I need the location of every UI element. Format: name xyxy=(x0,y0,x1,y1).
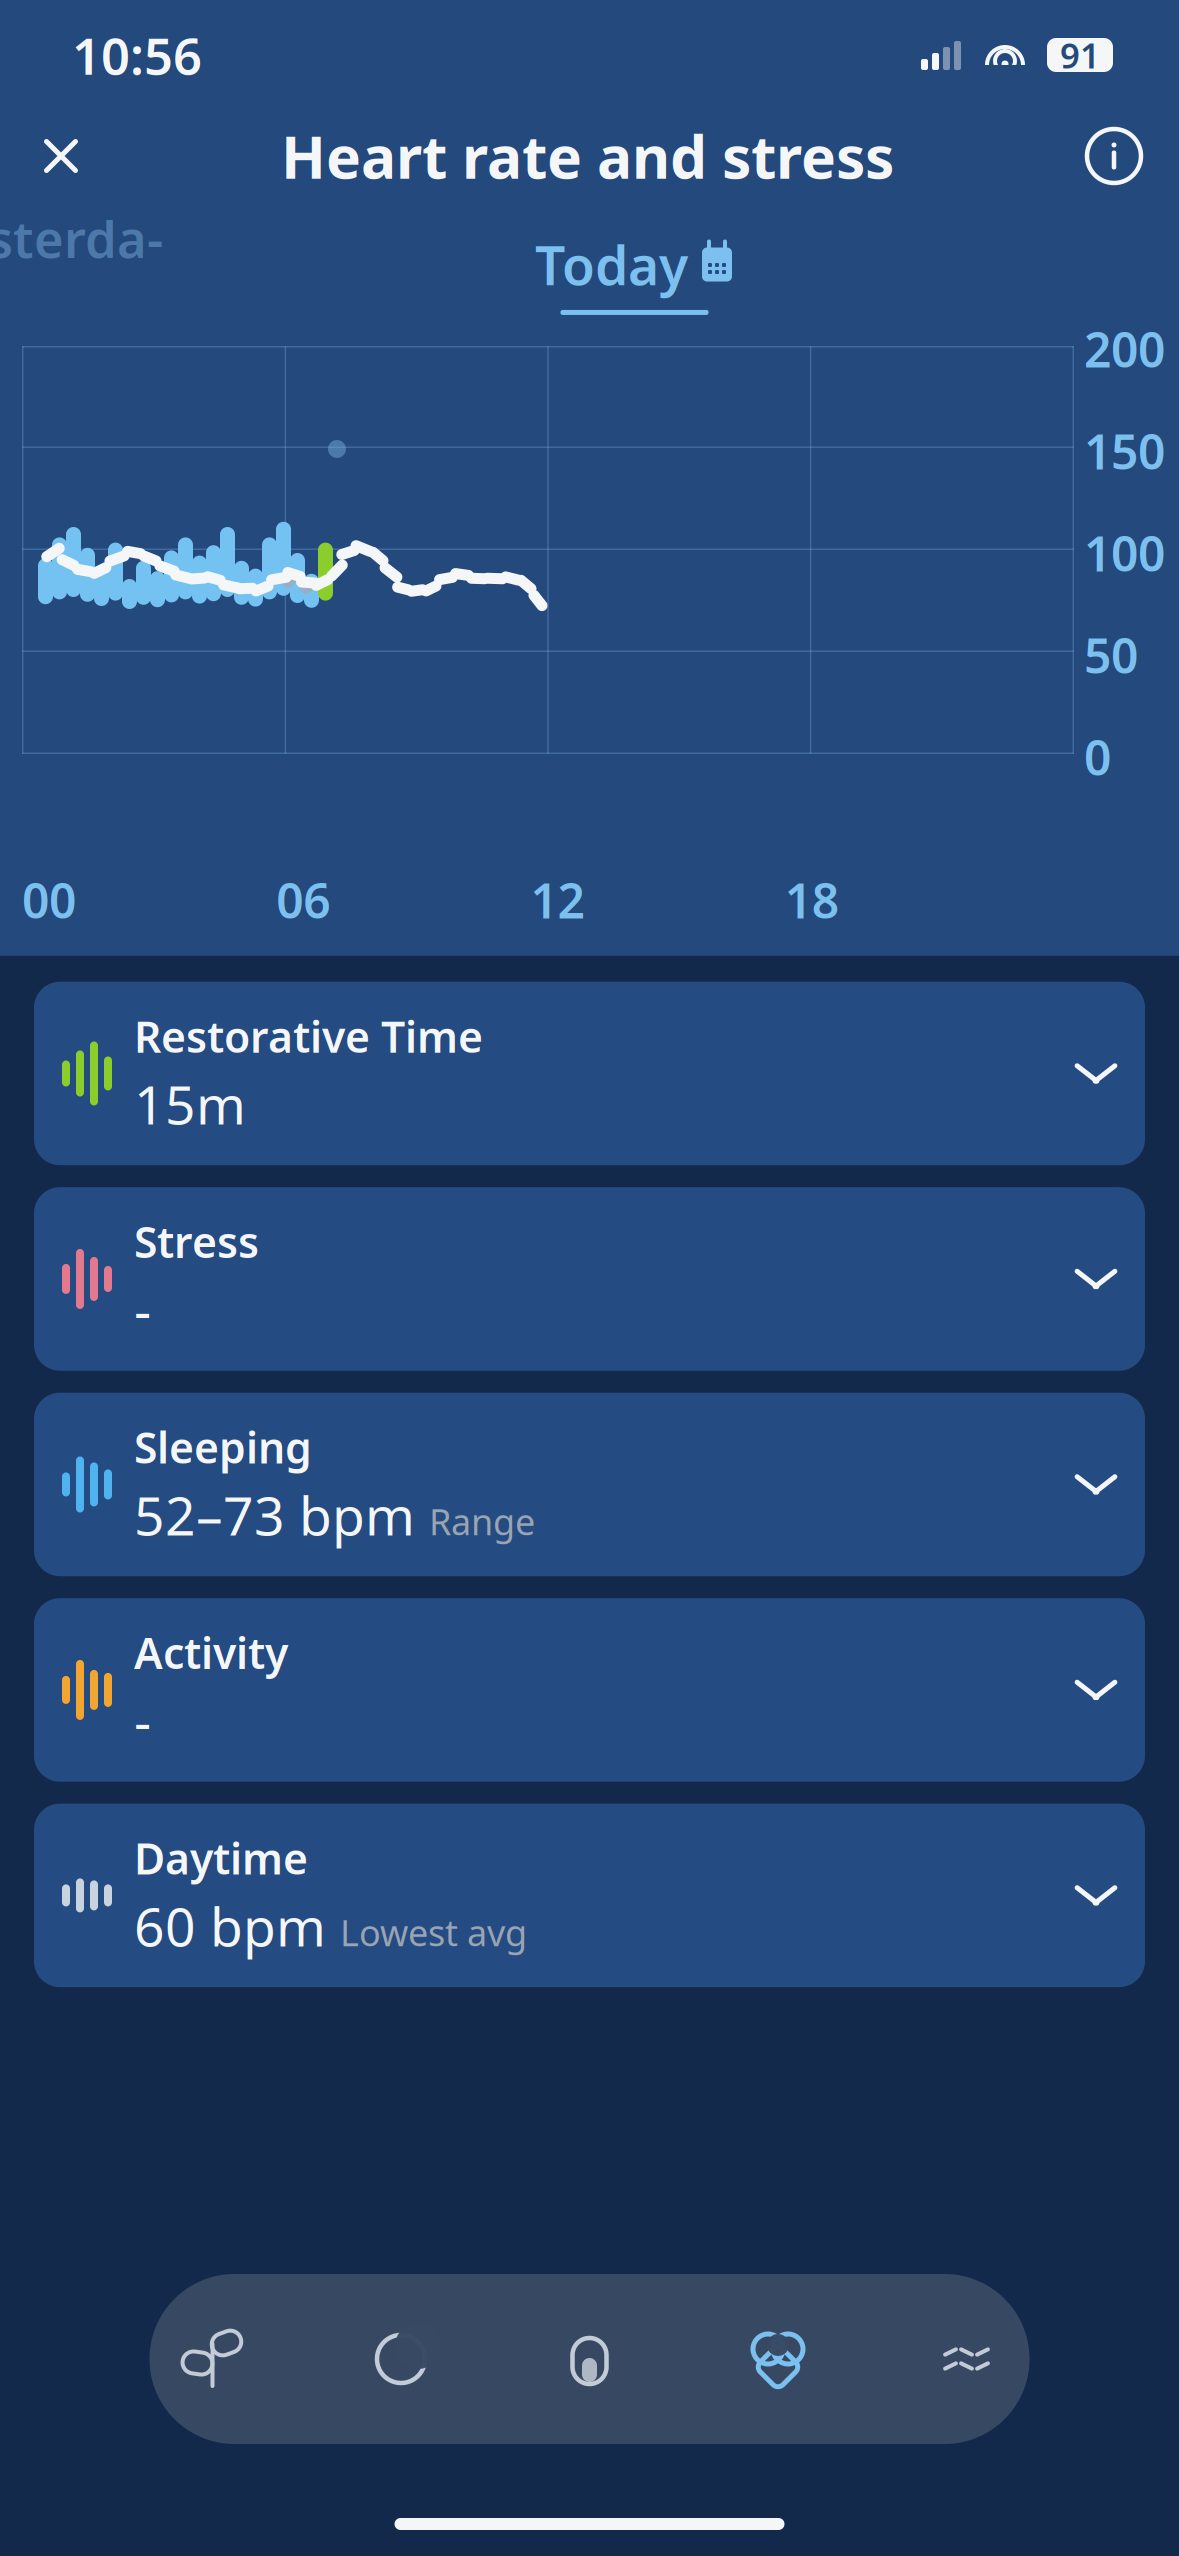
staticText: 00 xyxy=(22,868,76,932)
button[interactable]: Activity xyxy=(560,2330,618,2388)
button[interactable]: Daytime xyxy=(34,1804,1145,1987)
button[interactable]: Sleeping xyxy=(34,1393,1145,1576)
button[interactable]: Activity xyxy=(34,1598,1145,1782)
staticText: 52–73 bpm xyxy=(134,1479,415,1550)
staticText: 200 xyxy=(1084,317,1165,381)
button[interactable]: Information xyxy=(1079,121,1149,191)
button[interactable]: Sleep xyxy=(372,2330,430,2388)
button[interactable]: Yesterday xyxy=(0,191,170,353)
staticText: 91 xyxy=(1060,32,1100,78)
staticText: 60 bpm xyxy=(134,1890,326,1961)
staticText: 15m xyxy=(134,1068,246,1139)
staticText: 10:56 xyxy=(72,21,202,89)
staticText: Stress xyxy=(134,1213,259,1270)
staticText: 100 xyxy=(1084,521,1165,585)
staticText: 50 xyxy=(1084,623,1138,687)
staticText: Heart rate and stress xyxy=(281,117,894,195)
staticText: - xyxy=(134,1685,151,1756)
staticText: Today xyxy=(535,229,688,300)
button[interactable]: Readiness xyxy=(183,2330,241,2388)
staticText: 12 xyxy=(530,868,584,932)
staticText: Range xyxy=(429,1497,535,1545)
staticText: Restorative Time xyxy=(134,1008,483,1064)
button[interactable]: Today xyxy=(535,229,734,315)
staticText: Yesterday xyxy=(0,205,163,339)
button[interactable]: Heart rate and stress xyxy=(749,2330,807,2388)
staticText: Sleeping xyxy=(134,1419,312,1475)
button[interactable]: Stress xyxy=(34,1187,1145,1371)
staticText: Daytime xyxy=(134,1830,308,1886)
staticText: - xyxy=(134,1274,151,1345)
staticText: Activity xyxy=(134,1624,288,1681)
staticText: 18 xyxy=(785,868,839,932)
button[interactable]: Trends xyxy=(937,2330,995,2388)
button[interactable]: Close xyxy=(26,121,96,191)
staticText: 0 xyxy=(1084,725,1111,789)
button[interactable]: Restorative Time xyxy=(34,982,1145,1165)
staticText: 150 xyxy=(1084,419,1165,483)
staticText: Lowest avg xyxy=(340,1908,527,1956)
staticText: 06 xyxy=(276,868,330,932)
